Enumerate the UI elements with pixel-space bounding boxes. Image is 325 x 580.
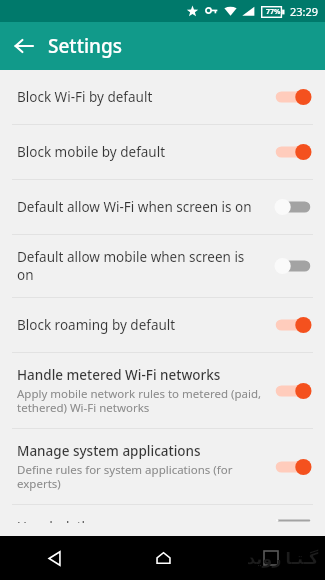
staticText: Default allow Wi-Fi when screen is on <box>17 198 252 216</box>
staticText: Settings <box>48 33 122 59</box>
staticText: Apply mobile network rules to metered (p… <box>17 386 263 415</box>
button[interactable]: Default allow mobile when screen is on <box>0 235 325 297</box>
staticText: Block mobile by default <box>17 143 166 161</box>
staticText: Block Wi-Fi by default <box>17 88 153 106</box>
staticText: 77% <box>266 7 281 17</box>
button[interactable]: Recents <box>217 536 325 580</box>
button[interactable]: Block mobile by default <box>0 125 325 179</box>
staticText: Define rules for system applications (fo… <box>17 462 263 491</box>
button[interactable]: Back <box>0 22 48 70</box>
button[interactable]: Manage system applications <box>0 429 325 504</box>
staticText: Manage system applications <box>17 442 201 460</box>
button[interactable]: Use dark theme <box>0 505 325 536</box>
staticText: 23:29 <box>290 4 319 19</box>
staticText: Block roaming by default <box>17 316 176 334</box>
button[interactable]: Block Wi-Fi by default <box>0 70 325 124</box>
button[interactable]: Home <box>109 536 217 580</box>
button[interactable]: Back <box>0 536 109 580</box>
staticText: Handle metered Wi-Fi networks <box>17 366 221 384</box>
button[interactable]: Block roaming by default <box>0 298 325 352</box>
button[interactable]: Default allow Wi-Fi when screen is on <box>0 180 325 234</box>
staticText: گـتـا رويد <box>247 547 319 569</box>
staticText: Use dark theme <box>17 518 118 523</box>
staticText: Default allow mobile when screen is on <box>17 248 263 284</box>
button[interactable]: Handle metered Wi-Fi networks <box>0 353 325 428</box>
